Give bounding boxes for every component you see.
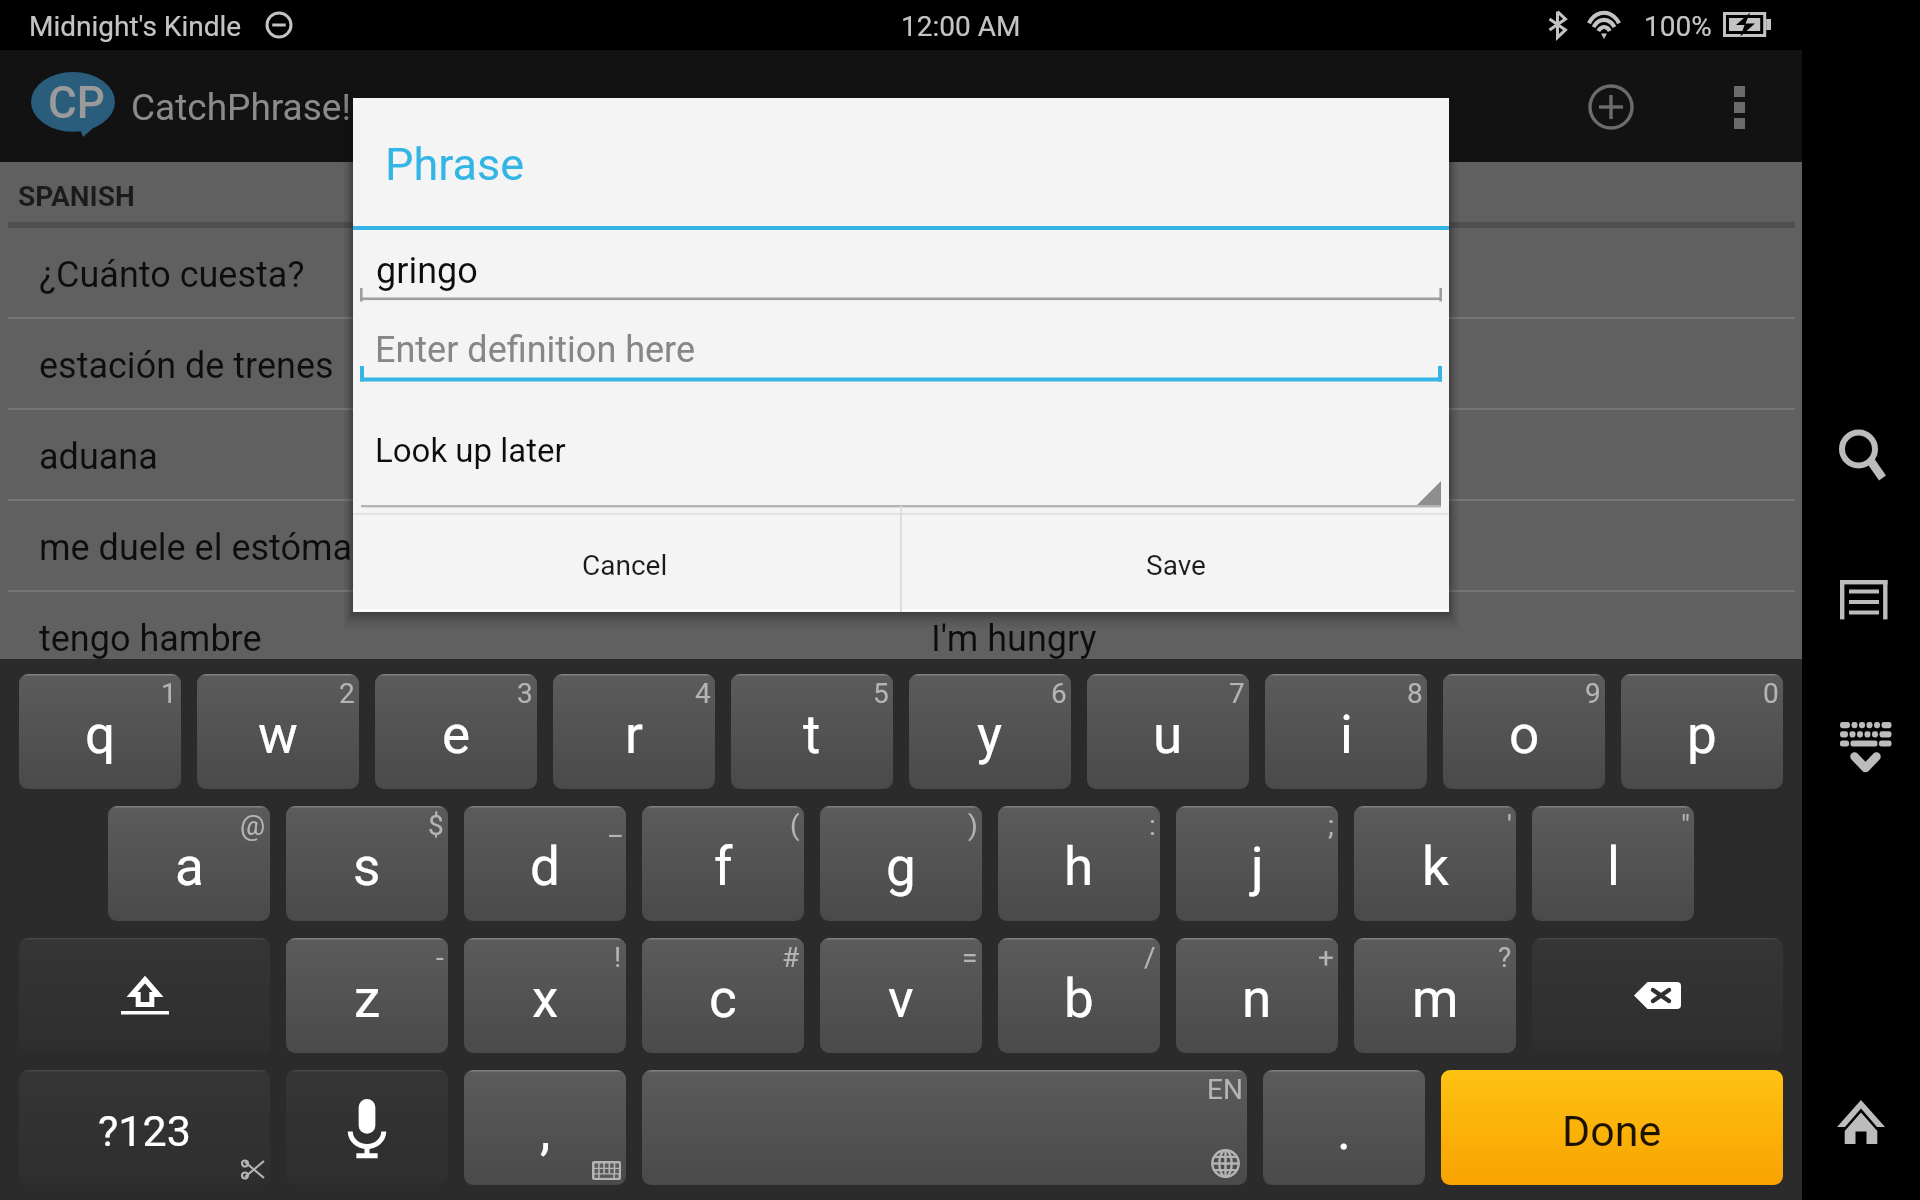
staticText: Phrase (385, 138, 525, 191)
button[interactable]: me duele el estómago (0, 501, 1802, 592)
staticText: ! (614, 941, 622, 974)
button[interactable]: s (286, 806, 448, 921)
staticText: tengo hambre (39, 618, 262, 660)
staticText: Cancel (582, 549, 668, 582)
button[interactable]: mic (286, 1070, 448, 1185)
button[interactable]: ?123 (19, 1070, 270, 1185)
button[interactable]: ¿Cuánto cuesta? (0, 228, 1802, 319)
staticText: 5 (873, 677, 889, 710)
button[interactable]: h (998, 806, 1160, 921)
button[interactable]: j (1176, 806, 1338, 921)
staticText: my stomach hurts (931, 527, 1221, 569)
staticText: 7 (1229, 677, 1245, 710)
staticText: 12:00 AM (901, 10, 1021, 43)
staticText: me duele el estómago (39, 527, 393, 569)
button[interactable]: tengo hambre (0, 592, 1802, 683)
button[interactable]: y (909, 674, 1071, 789)
button[interactable]: aduana (0, 410, 1802, 501)
staticText: f (714, 836, 733, 898)
staticText: j (1251, 836, 1264, 898)
staticText: t (803, 704, 821, 766)
button[interactable]: o (1443, 674, 1605, 789)
staticText: a (175, 836, 204, 898)
button[interactable]: w (197, 674, 359, 789)
staticText: I'm hungry (931, 618, 1097, 660)
button[interactable]: c (642, 938, 804, 1053)
staticText: o (1509, 704, 1540, 766)
button[interactable]: u (1087, 674, 1249, 789)
staticText: CatchPhrase! (131, 86, 351, 129)
button[interactable]: p (1621, 674, 1783, 789)
staticText: train station (931, 345, 1123, 387)
staticText: h (1064, 836, 1094, 898)
staticText: y (977, 704, 1003, 766)
staticText: ?123 (98, 1106, 191, 1156)
button[interactable]: Done (1441, 1070, 1783, 1185)
staticText: u (1153, 704, 1183, 766)
staticText: i (1340, 704, 1353, 766)
staticText: s (353, 836, 381, 898)
staticText: 4 (695, 677, 711, 710)
staticText: k (1422, 836, 1449, 898)
staticText: ( (790, 809, 800, 842)
staticText: ? (1498, 941, 1512, 974)
button[interactable]: Cancel (353, 506, 900, 612)
button[interactable]: , (464, 1070, 626, 1185)
button[interactable]: SPANISH (0, 162, 1802, 228)
button[interactable]: . (1263, 1070, 1425, 1185)
button[interactable]: l (1532, 806, 1694, 921)
button[interactable]: x (464, 938, 626, 1053)
staticText: g (886, 836, 916, 898)
button[interactable]: t (731, 674, 893, 789)
button[interactable]: estación de trenes (0, 319, 1802, 410)
staticText: 3 (517, 677, 533, 710)
staticText: " (1681, 809, 1690, 842)
button[interactable]: m (1354, 938, 1516, 1053)
button[interactable]: e (375, 674, 537, 789)
staticText: ; (1328, 809, 1334, 842)
button[interactable]: Hide keyboard (1840, 722, 1892, 772)
staticText: Done (1562, 1106, 1662, 1156)
button[interactable]: g (820, 806, 982, 921)
staticText: = (962, 941, 978, 974)
staticText: # (782, 941, 800, 974)
button[interactable]: shift (19, 938, 270, 1053)
staticText: estación de trenes (39, 345, 334, 387)
button[interactable]: z (286, 938, 448, 1053)
button[interactable]: More options (1709, 77, 1769, 137)
staticText: e (442, 704, 471, 766)
button[interactable]: r (553, 674, 715, 789)
staticText: - (436, 941, 444, 974)
button[interactable]: i (1265, 674, 1427, 789)
staticText: + (1318, 941, 1334, 974)
staticText: ¿Cuánto cuesta? (39, 254, 305, 296)
button[interactable]: Save (902, 506, 1449, 612)
button[interactable]: n (1176, 938, 1338, 1053)
button[interactable]: v (820, 938, 982, 1053)
staticText: gringo (376, 250, 478, 292)
staticText: n (1242, 968, 1272, 1030)
button[interactable]: Home (1837, 1100, 1887, 1148)
button[interactable]: b (998, 938, 1160, 1053)
button[interactable]: globe (642, 1070, 1247, 1185)
staticText: / (1144, 941, 1156, 974)
button[interactable]: k (1354, 806, 1516, 921)
staticText: EN (1207, 1073, 1243, 1106)
button[interactable]: Search (1836, 425, 1890, 481)
staticText: Midnight's Kindle (29, 10, 242, 43)
button[interactable]: Add phrase (1577, 73, 1645, 141)
button[interactable]: q (19, 674, 181, 789)
staticText: d (530, 836, 560, 898)
staticText: 9 (1585, 677, 1601, 710)
button[interactable]: del (1532, 938, 1783, 1053)
button[interactable]: Recents (1840, 580, 1890, 623)
staticText: r (625, 704, 643, 766)
staticText: 8 (1407, 677, 1423, 710)
staticText: CP (48, 77, 105, 129)
button[interactable]: a (108, 806, 270, 921)
staticText: @ (240, 809, 266, 842)
button[interactable]: d (464, 806, 626, 921)
button[interactable]: f (642, 806, 804, 921)
